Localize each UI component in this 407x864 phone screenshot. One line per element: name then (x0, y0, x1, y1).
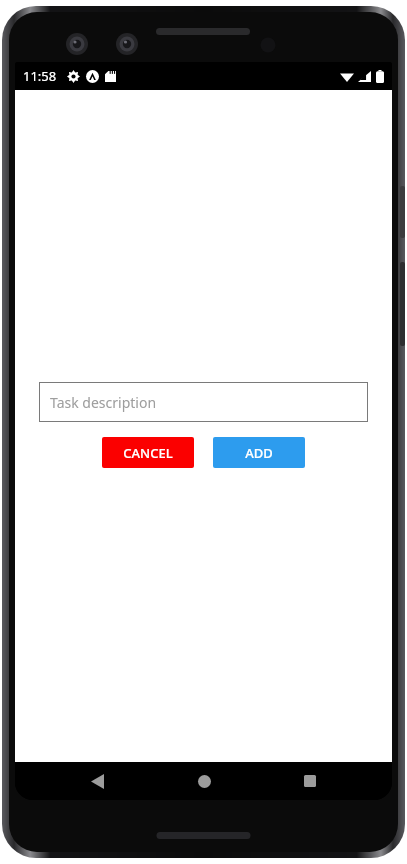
button[interactable]: Home (180, 762, 228, 800)
button[interactable]: Recent apps (286, 762, 334, 800)
button[interactable]: Task description (39, 382, 368, 422)
staticText: Task description (50, 393, 157, 412)
staticText: ADD (245, 444, 273, 462)
staticText: 11:58 (23, 67, 57, 85)
staticText: CANCEL (123, 444, 173, 462)
button[interactable]: ADD (213, 437, 305, 468)
button[interactable]: Back (73, 762, 121, 800)
button[interactable]: CANCEL (102, 437, 194, 468)
